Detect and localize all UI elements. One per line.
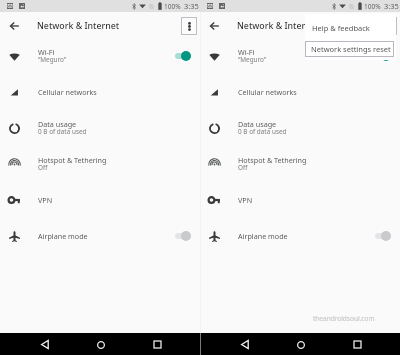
button[interactable]: Wi‑Fi	[0, 38, 200, 74]
button[interactable]: Cellular networks	[200, 74, 400, 110]
staticText: Off	[238, 163, 248, 172]
button[interactable]: Navigate up	[4, 16, 24, 36]
button[interactable]: Turn off	[175, 49, 191, 63]
button[interactable]: Back	[36, 336, 53, 353]
button[interactable]: Recent apps	[349, 336, 366, 353]
button[interactable]: VPN	[0, 182, 200, 218]
staticText: Off	[38, 163, 48, 172]
staticText: Network & Internet	[37, 20, 120, 32]
staticText: Network & Internet	[237, 20, 320, 32]
button[interactable]: Turn on	[175, 229, 191, 243]
button[interactable]: Back	[236, 336, 253, 353]
button[interactable]: Home	[292, 336, 309, 353]
button[interactable]: Cellular networks	[0, 74, 200, 110]
staticText: “Meguro”	[238, 55, 267, 64]
staticText: 100%	[364, 2, 381, 11]
button[interactable]: Recent apps	[149, 336, 166, 353]
staticText: Help & feedback	[312, 23, 370, 33]
button[interactable]: Airplane mode	[0, 218, 200, 254]
button[interactable]: Hotspot & Tethering	[200, 146, 400, 182]
button[interactable]: Help & feedback	[305, 14, 396, 41]
staticText: Wi‑Fi	[38, 47, 55, 57]
staticText: Network settings reset	[311, 44, 391, 54]
button[interactable]: Navigate up	[204, 16, 224, 36]
staticText: 3:35	[384, 1, 399, 11]
staticText: Wi‑Fi	[238, 47, 255, 57]
staticText: 100%	[164, 2, 181, 11]
staticText: Airplane mode	[38, 231, 88, 241]
button[interactable]: Data usage	[0, 110, 200, 146]
staticText: 0 B of data used	[38, 127, 87, 136]
staticText: Cellular networks	[38, 87, 97, 97]
button[interactable]: Turn on	[375, 229, 391, 243]
button[interactable]: Hotspot & Tethering	[0, 146, 200, 182]
button[interactable]: Turn off	[375, 49, 391, 63]
staticText: Data usage	[238, 119, 277, 129]
button[interactable]: Data usage	[200, 110, 400, 146]
button[interactable]: More options	[181, 17, 197, 35]
staticText: Airplane mode	[238, 231, 288, 241]
staticText: Hotspot & Tethering	[38, 155, 107, 165]
button[interactable]: More options	[381, 17, 397, 35]
staticText: “Meguro”	[38, 55, 67, 64]
staticText: 3:35	[184, 1, 199, 11]
button[interactable]: Wi‑Fi	[200, 38, 400, 74]
staticText: Cellular networks	[238, 87, 297, 97]
staticText: Data usage	[38, 119, 77, 129]
staticText: theandroidsoul.com	[313, 314, 375, 323]
button[interactable]: VPN	[200, 182, 400, 218]
staticText: 0 B of data used	[238, 127, 287, 136]
button[interactable]: Home	[92, 336, 109, 353]
button[interactable]: Network settings reset	[305, 41, 394, 57]
staticText: VPN	[238, 195, 253, 205]
staticText: VPN	[38, 195, 53, 205]
button[interactable]: Airplane mode	[200, 218, 400, 254]
staticText: Hotspot & Tethering	[238, 155, 307, 165]
